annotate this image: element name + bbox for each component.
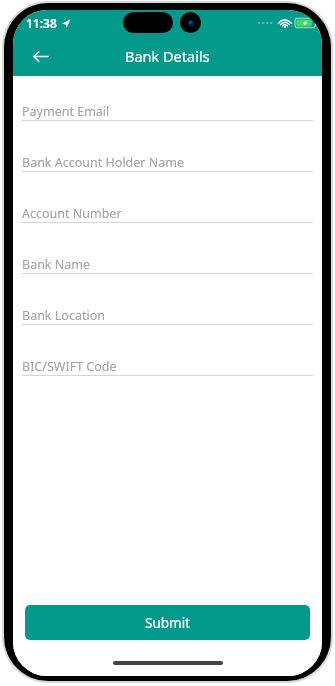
staticText: Bank Location (22, 307, 105, 324)
staticText: Submit (145, 614, 191, 632)
button[interactable]: Payment Email (22, 102, 313, 153)
button[interactable]: Submit (25, 605, 310, 640)
button[interactable]: BIC/SWIFT Code (22, 357, 313, 408)
staticText: BIC/SWIFT Code (22, 358, 117, 375)
staticText: Bank Details (125, 46, 210, 66)
button[interactable]: Bank Account Holder Name (22, 153, 313, 204)
button[interactable]: Bank Name (22, 255, 313, 306)
staticText: Bank Account Holder Name (22, 154, 185, 171)
button[interactable]: Back (26, 42, 54, 70)
button[interactable]: Account Number (22, 204, 313, 255)
staticText: Payment Email (22, 103, 110, 120)
button[interactable]: Bank Location (22, 306, 313, 357)
staticText: Bank Name (22, 256, 91, 273)
staticText: Account Number (22, 205, 122, 222)
staticText: 11:38 (26, 15, 57, 31)
